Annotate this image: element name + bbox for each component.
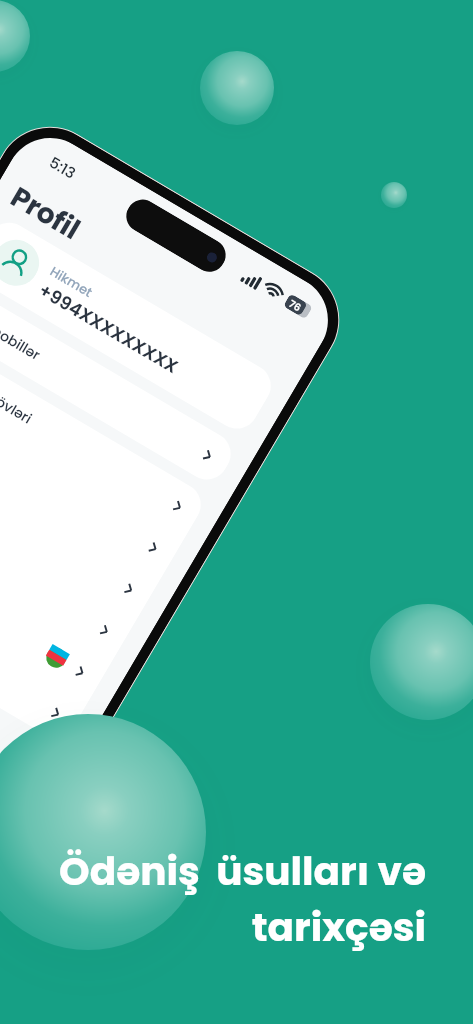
staticText: Yanacaq növləri <box>0 353 36 429</box>
button[interactable]: Çıxış <box>0 540 87 745</box>
staticText: Profil <box>3 178 87 249</box>
button[interactable]: Haqqımızda <box>0 458 136 662</box>
staticText: Avtomobillər <box>0 302 45 365</box>
staticText: Hikmet <box>47 262 96 301</box>
staticText: +994XXXXXXXXX <box>34 277 183 379</box>
button[interactable]: Ödənişlərim <box>0 375 184 580</box>
staticText: 76 <box>286 296 304 314</box>
button[interactable]: Dil <box>0 499 111 704</box>
staticText: Ödəniş üsulları və tarixçəsi <box>0 844 426 955</box>
button[interactable]: Bildirişlər <box>0 416 160 621</box>
button[interactable]: Avtomobillər <box>0 283 239 488</box>
staticText: 5:13 <box>45 152 80 184</box>
button[interactable]: Hikmet <box>0 215 279 437</box>
button[interactable]: Yanacaq növləri <box>0 334 209 538</box>
